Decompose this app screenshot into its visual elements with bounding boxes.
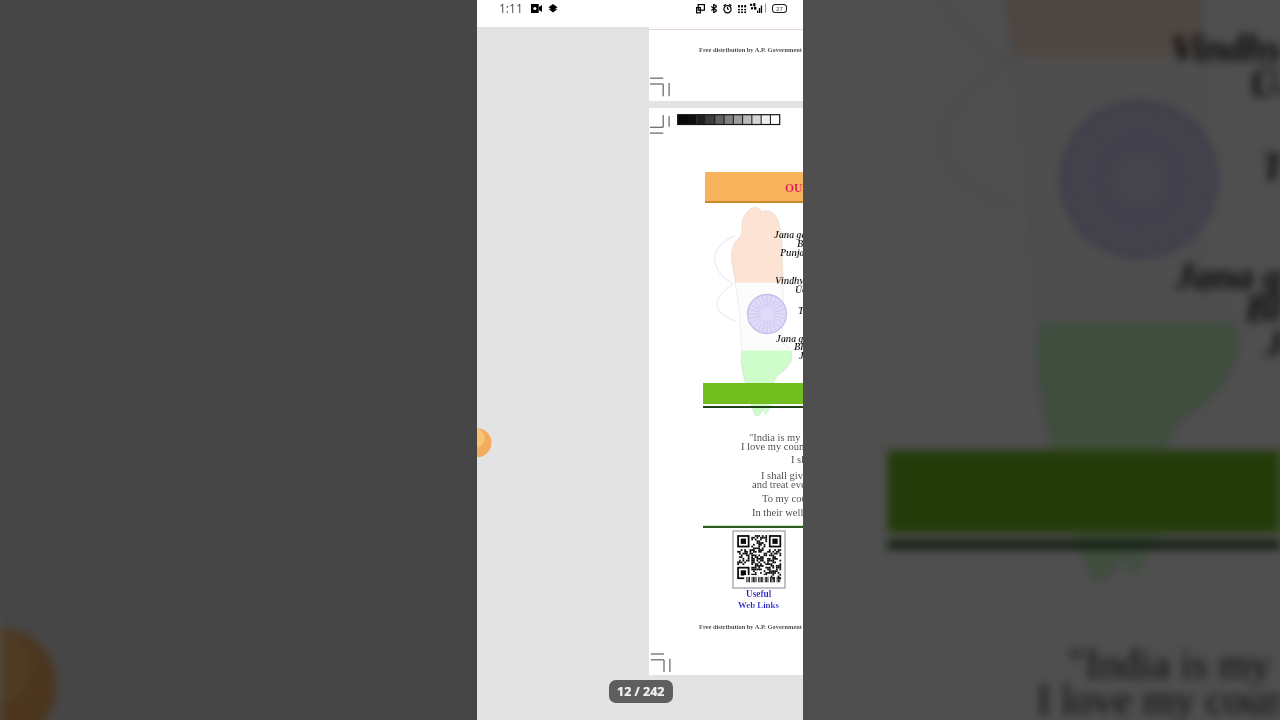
staticText: Web Links	[738, 600, 779, 610]
staticText: Useful	[746, 589, 772, 599]
staticText: and treat everyone with courtesy.	[752, 479, 803, 491]
staticText: 27	[776, 5, 783, 12]
staticText: Bharata bhagya vidhata	[794, 341, 803, 352]
staticText: Vindhya Himachala Yamuna Ganga	[775, 275, 803, 286]
staticText: Jana gana mana adhinayaka jaya he	[774, 229, 803, 240]
staticText: "India is my country. All Indians are my…	[1068, 643, 1280, 690]
staticText: Uchchala jaladhi taranga	[1249, 61, 1280, 104]
staticText: In their well-being and prosperity alone…	[752, 507, 803, 519]
staticText: I love my country and I am proud of its …	[741, 441, 803, 453]
staticText: Jaya he, jaya he, jaya he	[1265, 321, 1280, 364]
staticText: Tava shubha nama jage	[798, 305, 803, 316]
button[interactable]: 12 / 242	[609, 680, 673, 703]
staticText: Free distribution by A.P. Government	[699, 623, 802, 630]
staticText: Bharata bhagya vidhata	[1245, 285, 1280, 328]
staticText: Jana gana mangala dayaka jaya he	[1174, 254, 1280, 297]
staticText: Jana gana mangala dayaka jaya he	[776, 333, 803, 344]
staticText: Bharata bhagya vidhata	[797, 238, 803, 249]
staticText: Punjaba Sindhu Gujarata Maratha	[780, 247, 803, 258]
other: Layers	[548, 3, 558, 13]
staticText: I shall always strive to be worthy of it…	[791, 454, 803, 466]
staticText: "India is my country. All Indians are my…	[749, 432, 803, 444]
staticText: Free distribution by A.P. Government	[699, 46, 802, 53]
staticText: I love my country and I am proud of its …	[1037, 678, 1280, 720]
staticText: To my country and my people, I pledge my…	[762, 493, 803, 505]
staticText: OUR NATIONAL ANTHEM	[785, 182, 803, 195]
staticText: Vindhya Himachala Yamuna Ganga	[1171, 26, 1280, 69]
staticText: 12 / 242	[617, 683, 665, 700]
staticText: Uchchala jaladhi taranga	[795, 284, 803, 295]
staticText: Jaya he, jaya he, jaya he	[799, 350, 803, 361]
other: Screen recording	[531, 4, 542, 13]
staticText: 1:11	[499, 0, 523, 16]
staticText: Tava shubha nama jage	[1261, 144, 1280, 187]
staticText: I shall give my parents, teachers and al…	[761, 470, 803, 482]
